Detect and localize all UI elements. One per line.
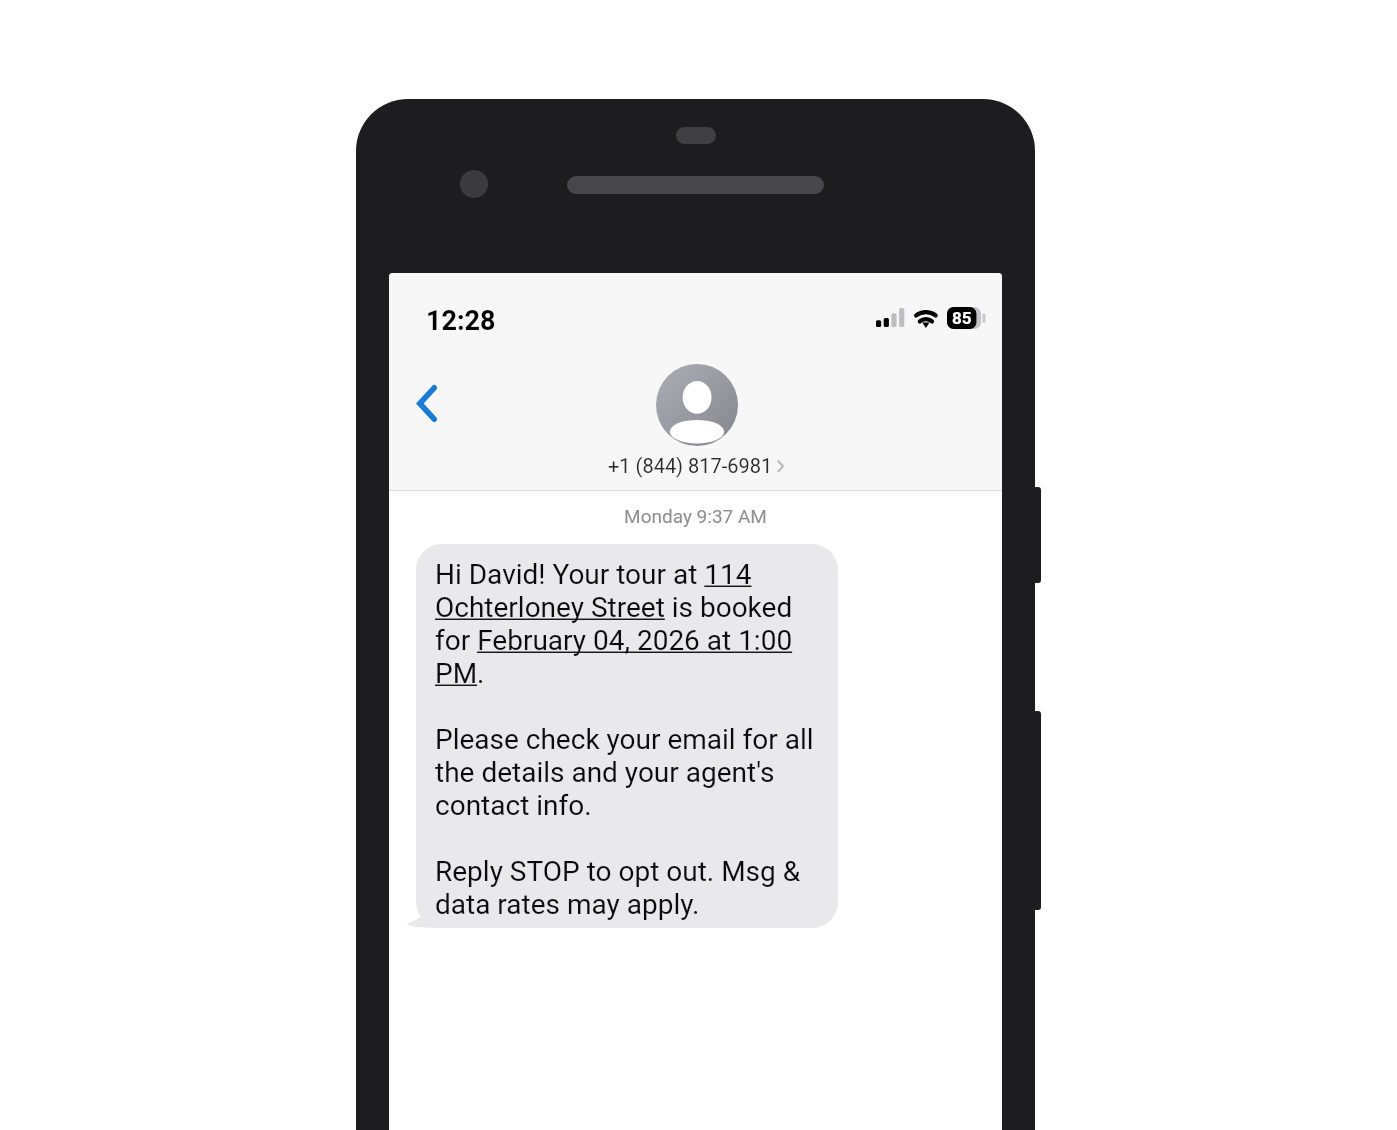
button[interactable]: Contact avatar xyxy=(656,364,738,446)
staticText: 85 xyxy=(952,308,972,328)
staticText: Hi David! Your tour at 114 Ochterloney S… xyxy=(435,558,822,921)
button[interactable]: Hi David! Your tour at 114 Ochterloney S… xyxy=(416,544,838,928)
button[interactable]: +1 (844) 817-6981 xyxy=(608,454,785,477)
staticText: Monday 9:37 AM xyxy=(389,505,1002,527)
staticText: +1 (844) 817-6981 xyxy=(608,454,773,477)
button[interactable]: Back xyxy=(403,371,451,419)
staticText: 12:28 xyxy=(426,305,496,337)
